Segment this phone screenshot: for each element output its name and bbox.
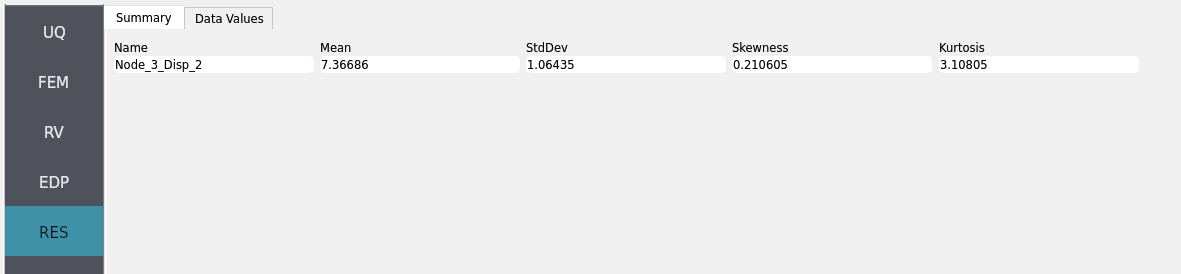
button[interactable]: EDP [5, 156, 103, 206]
staticText: Data Values [195, 12, 264, 25]
staticText: RV [44, 124, 64, 141]
staticText: Skewness [732, 41, 789, 54]
button[interactable]: 1.06435 [526, 56, 726, 73]
staticText: Node_3_Disp_2 [115, 58, 203, 71]
staticText: 1.06435 [527, 58, 575, 71]
staticText: Node_3_Disp_2 [115, 58, 203, 71]
staticText: StdDev [526, 41, 568, 54]
button[interactable]: Data Values [185, 6, 273, 29]
staticText: Mean [320, 41, 352, 54]
staticText: 7.36686 [321, 58, 369, 71]
staticText: 3.10805 [940, 58, 988, 71]
button[interactable]: 0.210605 [732, 56, 932, 73]
staticText: 0.210605 [733, 58, 788, 71]
staticText: Summary [116, 11, 172, 24]
button[interactable]: RES [5, 206, 103, 256]
button[interactable]: RV [5, 106, 103, 156]
staticText: StdDev [526, 41, 568, 54]
staticText: Mean [320, 41, 352, 54]
staticText: Summary [116, 11, 172, 24]
staticText: Kurtosis [939, 41, 985, 54]
staticText: Name [114, 41, 148, 54]
staticText: Data Values [195, 12, 264, 25]
button[interactable]: Node_3_Disp_2 [114, 56, 314, 73]
button[interactable]: FEM [5, 56, 103, 106]
staticText: FEM [38, 74, 70, 91]
staticText: 7.36686 [321, 58, 369, 71]
button[interactable]: 3.10805 [939, 56, 1139, 73]
staticText: Name [114, 41, 148, 54]
staticText: RES [39, 224, 69, 241]
staticText: Kurtosis [939, 41, 985, 54]
staticText: Skewness [732, 41, 789, 54]
button[interactable]: UQ [5, 6, 103, 56]
staticText: 1.06435 [527, 58, 575, 71]
staticText: UQ [43, 24, 66, 41]
staticText: 0.210605 [733, 58, 788, 71]
staticText: 3.10805 [940, 58, 988, 71]
button[interactable]: 7.36686 [320, 56, 520, 73]
staticText: EDP [39, 174, 70, 191]
button[interactable]: Summary [104, 5, 184, 29]
